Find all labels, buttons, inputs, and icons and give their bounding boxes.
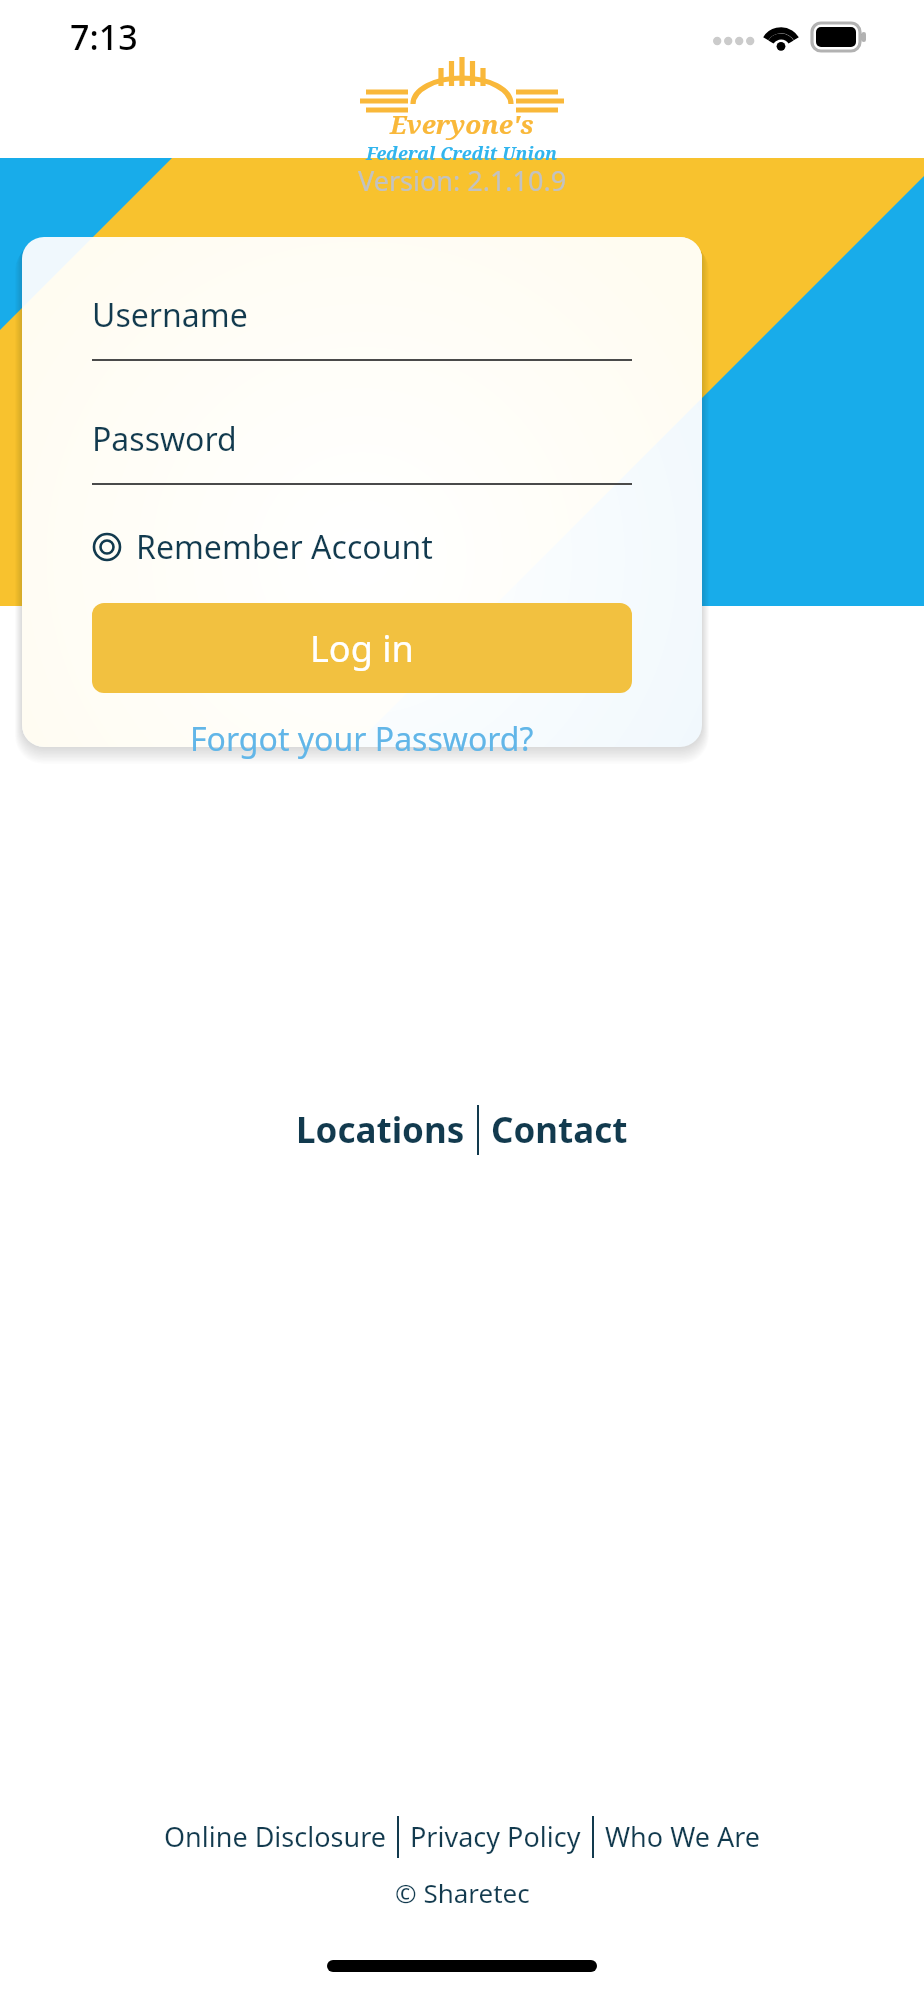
staticText: Username — [92, 293, 248, 337]
other: Battery — [812, 23, 866, 51]
button[interactable]: Log in — [92, 603, 632, 693]
button[interactable]: Contact — [479, 1098, 640, 1162]
button[interactable]: Forgot your Password? — [176, 709, 548, 769]
other: Wi-Fi — [763, 24, 799, 51]
staticText: © Sharetec — [395, 1875, 530, 1910]
staticText: Federal Credit Union — [366, 141, 558, 166]
button[interactable]: Password — [92, 417, 632, 485]
button[interactable]: Who We Are — [594, 1812, 772, 1861]
staticText: Remember Account — [136, 525, 433, 569]
staticText: Version: 2.1.10.9 — [358, 162, 567, 199]
button[interactable]: Locations — [284, 1098, 477, 1162]
staticText: 7:13 — [70, 14, 138, 60]
staticText: Everyone's — [390, 106, 534, 141]
staticText: Password — [92, 417, 237, 461]
button[interactable]: Remember Account — [86, 519, 439, 575]
button[interactable]: Privacy Policy — [399, 1812, 592, 1861]
button[interactable]: Online Disclosure — [153, 1812, 397, 1861]
button[interactable]: Username — [92, 293, 632, 361]
staticText: Log in — [310, 624, 414, 673]
